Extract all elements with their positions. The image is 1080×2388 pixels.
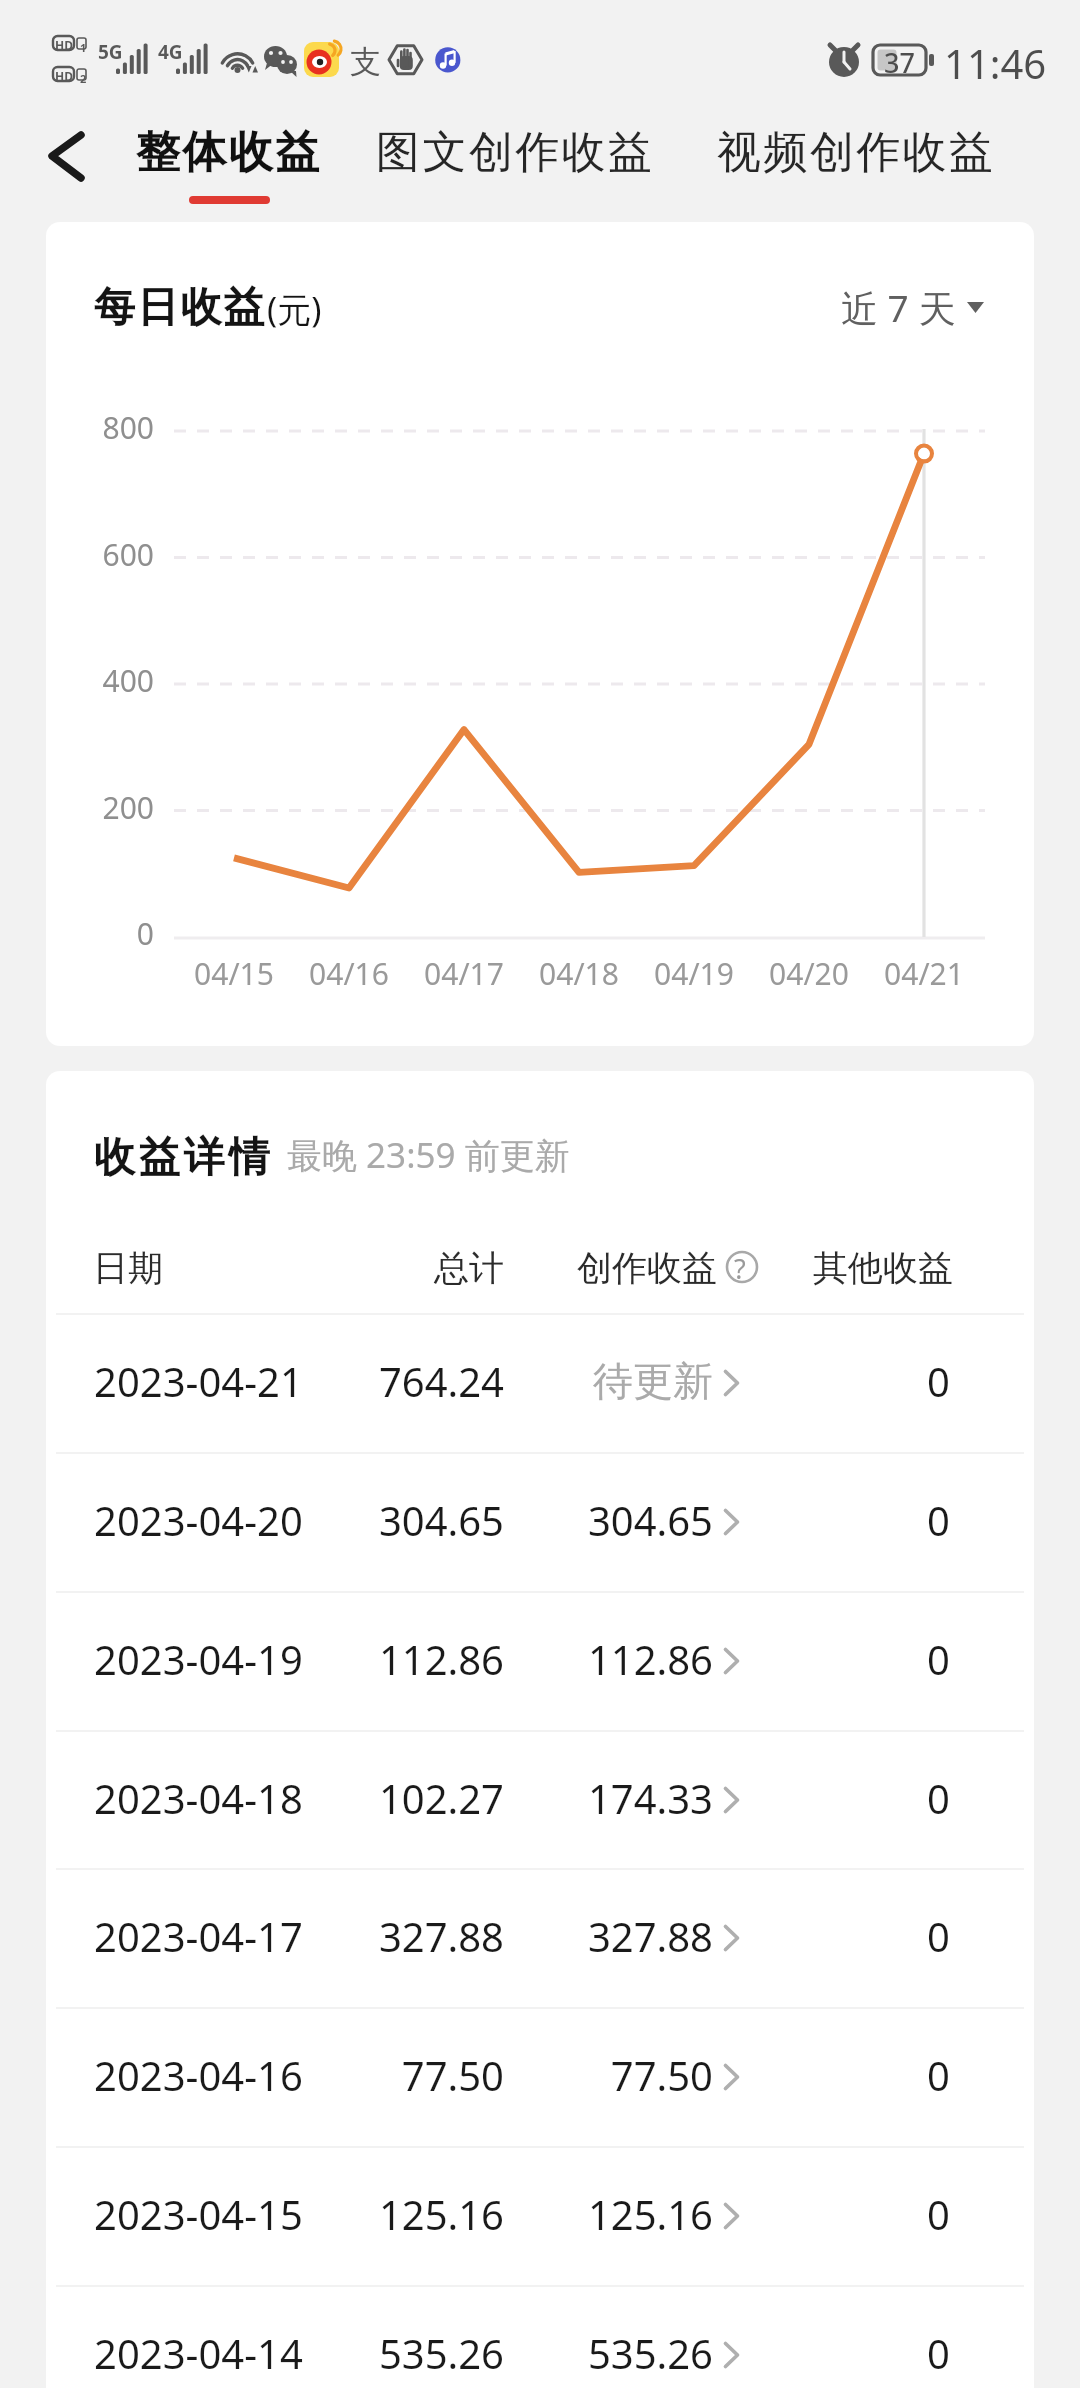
button[interactable]: 整体收益 (122, 102, 336, 202)
staticText: 327.88 (453, 1909, 713, 1963)
staticText: 支 (350, 42, 381, 81)
staticText: 总计 (264, 1246, 504, 1290)
staticText: 0 (690, 1632, 950, 1686)
staticText: 近 7 天 (841, 282, 956, 332)
button[interactable]: 2023-04-19 (46, 1589, 1034, 1728)
staticText: 04/21 (854, 953, 994, 994)
staticText: 04/20 (739, 953, 879, 994)
staticText: 0 (690, 2187, 950, 2241)
staticText: 2023-04-14 (94, 2326, 303, 2380)
staticText: 04/15 (164, 953, 304, 994)
staticText: 04/16 (279, 953, 419, 994)
staticText: 0 (690, 1354, 950, 1408)
button[interactable]: 2023-04-21 (46, 1311, 1034, 1450)
staticText: (元) (267, 286, 322, 332)
staticText: 11:46 (944, 36, 1047, 90)
staticText: 200 (46, 787, 154, 828)
button[interactable]: 2023-04-17 (46, 1866, 1034, 2005)
staticText: 37 (884, 44, 915, 81)
staticText: 102.27 (244, 1771, 504, 1825)
button[interactable]: 2023-04-16 (46, 2005, 1034, 2144)
staticText: 2023-04-20 (94, 1493, 303, 1547)
staticText: 2023-04-15 (94, 2187, 303, 2241)
staticText: 最晚 23:59 前更新 (287, 1131, 570, 1179)
button[interactable]: 图文创作收益 (362, 102, 669, 202)
button[interactable]: 2023-04-18 (46, 1728, 1034, 1867)
staticText: 112.86 (244, 1632, 504, 1686)
staticText: 图文创作收益 (376, 125, 655, 180)
staticText: 2023-04-18 (94, 1771, 303, 1825)
button[interactable]: 2023-04-15 (46, 2144, 1034, 2283)
staticText: HD (55, 37, 73, 53)
staticText: 0 (46, 913, 154, 954)
button[interactable]: 2023-04-20 (46, 1450, 1034, 1589)
staticText: 每日收益 (94, 282, 267, 334)
button[interactable]: 视频创作收益 (703, 102, 1010, 202)
button[interactable]: 2023-04-14 (46, 2283, 1034, 2388)
staticText: 2023-04-21 (94, 1354, 303, 1408)
staticText: 2023-04-17 (94, 1909, 303, 1963)
staticText: 创作收益 (577, 1246, 717, 1290)
staticText: 764.24 (244, 1354, 504, 1408)
staticText: 535.26 (453, 2326, 713, 2380)
staticText: 174.33 (453, 1771, 713, 1825)
staticText: 待更新 (453, 1356, 713, 1406)
staticText: 2023-04-19 (94, 1632, 303, 1686)
staticText: 整体收益 (136, 125, 322, 180)
staticText: 日期 (93, 1246, 163, 1290)
staticText: 0 (690, 2326, 950, 2380)
staticText: 0 (690, 1771, 950, 1825)
button[interactable]: Back (22, 100, 110, 212)
staticText: 2 (80, 71, 87, 86)
staticText: 0 (690, 1909, 950, 1963)
staticText: 4G (158, 39, 183, 65)
staticText: 0 (690, 2048, 950, 2102)
staticText: 304.65 (453, 1493, 713, 1547)
staticText: 其他收益 (713, 1246, 953, 1290)
staticText: 125.16 (244, 2187, 504, 2241)
staticText: 2023-04-16 (94, 2048, 303, 2102)
staticText: 0 (690, 1493, 950, 1547)
staticText: 04/17 (394, 953, 534, 994)
staticText: 535.26 (244, 2326, 504, 2380)
staticText: 304.65 (244, 1493, 504, 1547)
staticText: 04/19 (624, 953, 764, 994)
button[interactable]: 近 7 天 (841, 282, 984, 332)
staticText: 5G (98, 39, 123, 65)
staticText: 收益详情 (94, 1132, 274, 1184)
staticText: 1 (80, 40, 87, 55)
staticText: 77.50 (244, 2048, 504, 2102)
staticText: 600 (46, 534, 154, 575)
staticText: HD (55, 68, 73, 84)
staticText: ? (734, 1250, 746, 1287)
staticText: 400 (46, 660, 154, 701)
staticText: 800 (46, 407, 154, 448)
staticText: 327.88 (244, 1909, 504, 1963)
staticText: 视频创作收益 (717, 125, 996, 180)
staticText: 112.86 (453, 1632, 713, 1686)
staticText: 125.16 (453, 2187, 713, 2241)
staticText: 04/18 (509, 953, 649, 994)
staticText: 77.50 (453, 2048, 713, 2102)
